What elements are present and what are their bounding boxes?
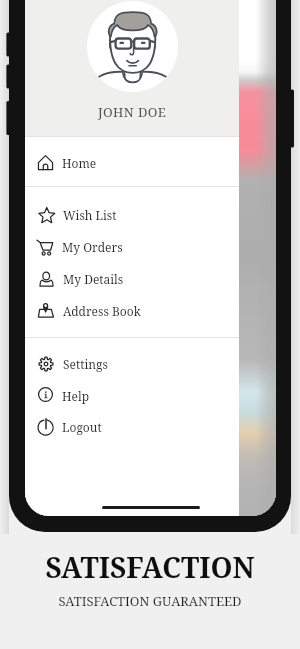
button[interactable]: Address Book <box>25 295 239 327</box>
button[interactable]: Home <box>25 147 239 179</box>
staticText: Home <box>62 155 97 171</box>
staticText: My Orders <box>62 239 123 255</box>
staticText: Address Book <box>63 303 141 319</box>
staticText: SATISFACTION GUARANTEED <box>58 592 242 610</box>
button[interactable]: My Details <box>25 263 239 295</box>
staticText: My Details <box>63 271 124 287</box>
button[interactable]: Logout <box>25 411 239 443</box>
staticText: SATISFACTION <box>45 548 255 586</box>
staticText: Settings <box>63 356 108 372</box>
button[interactable]: Wish List <box>25 199 239 231</box>
staticText: Wish List <box>63 207 117 223</box>
button[interactable]: Settings <box>25 348 239 380</box>
staticText: JOHN DOE <box>98 103 167 121</box>
button[interactable]: Help <box>25 380 239 412</box>
button[interactable]: My Orders <box>25 231 239 263</box>
staticText: Logout <box>62 419 102 435</box>
staticText: Help <box>62 388 90 404</box>
